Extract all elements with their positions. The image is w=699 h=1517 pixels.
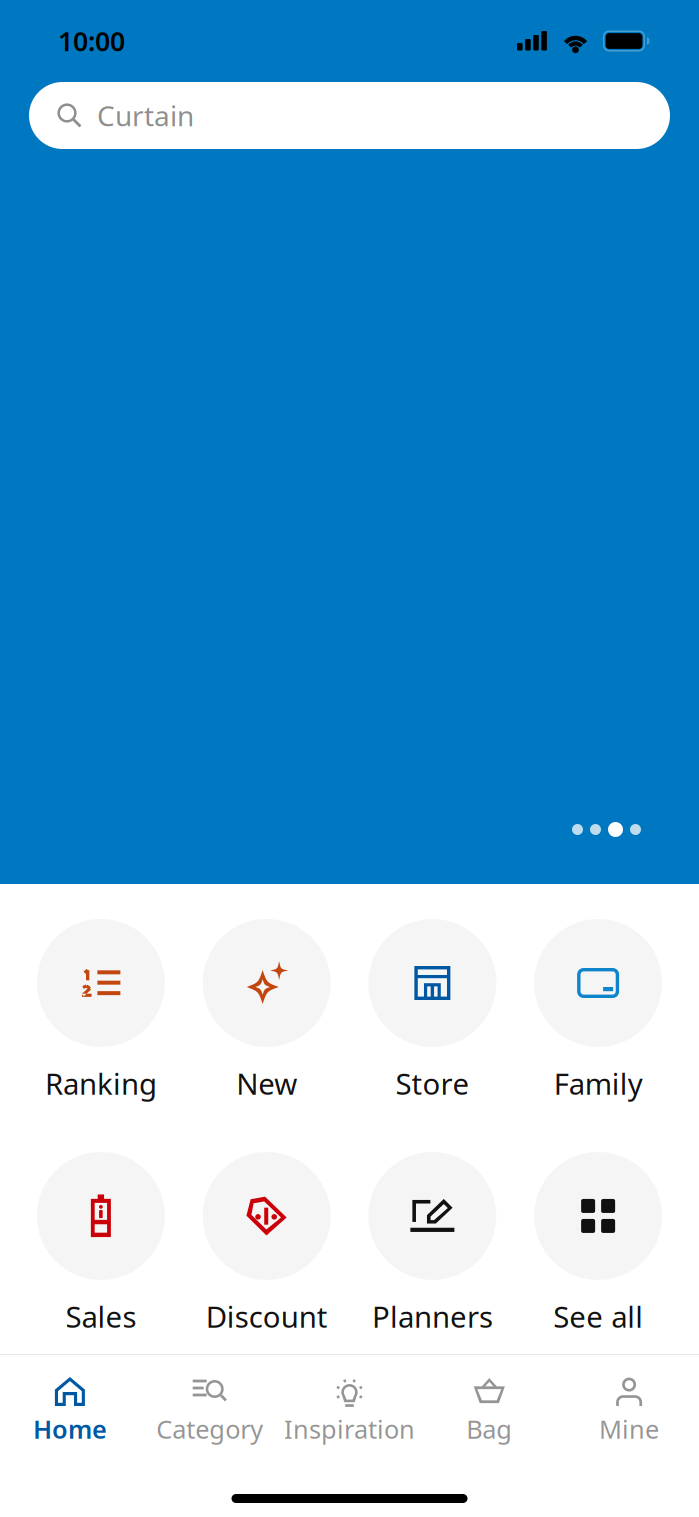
button[interactable]: Home: [0, 1355, 140, 1446]
button[interactable]: Planners: [349, 1152, 515, 1336]
button[interactable]: Inspiration: [280, 1355, 419, 1446]
staticText: Home: [33, 1412, 107, 1446]
staticText: Curtain: [97, 97, 194, 134]
button[interactable]: Family: [515, 919, 681, 1103]
button[interactable]: Bag: [419, 1355, 559, 1446]
staticText: Inspiration: [284, 1412, 415, 1446]
button[interactable]: Ranking: [18, 919, 184, 1103]
staticText: Category: [156, 1412, 263, 1446]
button[interactable]: Curtain: [29, 82, 670, 149]
button[interactable]: New: [184, 919, 350, 1103]
button[interactable]: Discount: [184, 1152, 350, 1336]
staticText: Ranking: [45, 1064, 157, 1103]
staticText: Planners: [372, 1297, 493, 1336]
button[interactable]: Category: [140, 1355, 280, 1446]
staticText: See all: [553, 1297, 643, 1336]
staticText: Family: [554, 1064, 643, 1103]
button[interactable]: Store: [349, 919, 515, 1103]
button[interactable]: Mine: [559, 1355, 699, 1446]
staticText: Store: [395, 1064, 469, 1103]
button[interactable]: See all: [515, 1152, 681, 1336]
staticText: New: [236, 1064, 297, 1103]
staticText: Bag: [466, 1412, 512, 1446]
button[interactable]: Sales: [18, 1152, 184, 1336]
staticText: Mine: [599, 1412, 659, 1446]
staticText: Sales: [65, 1297, 136, 1336]
staticText: 10:00: [58, 23, 125, 59]
staticText: Discount: [206, 1297, 328, 1336]
